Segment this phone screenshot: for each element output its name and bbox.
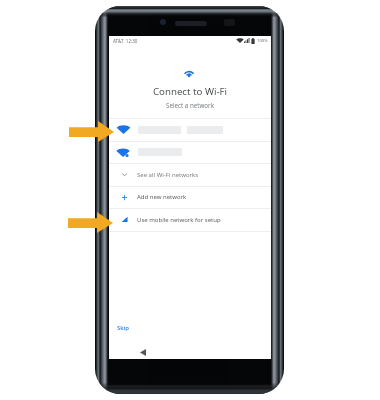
- button[interactable]: See all Wi-Fi networks: [109, 163, 271, 186]
- button[interactable]: Back: [133, 342, 153, 362]
- button[interactable]: Skip: [113, 320, 133, 336]
- staticText: Select a network: [109, 101, 271, 109]
- staticText: Skip: [117, 324, 129, 332]
- button[interactable]: Add new network: [109, 186, 271, 208]
- staticText: See all Wi-Fi networks: [137, 171, 199, 179]
- staticText: 100%: [257, 38, 268, 44]
- button[interactable]: Use mobile network for setup: [109, 208, 271, 231]
- button[interactable]: [109, 141, 271, 163]
- staticText: Use mobile network for setup: [137, 216, 221, 224]
- staticText: Add new network: [137, 193, 187, 201]
- staticText: Connect to Wi-Fi: [109, 85, 271, 98]
- staticText: AT&T 12:30: [113, 38, 138, 44]
- button[interactable]: [109, 118, 271, 141]
